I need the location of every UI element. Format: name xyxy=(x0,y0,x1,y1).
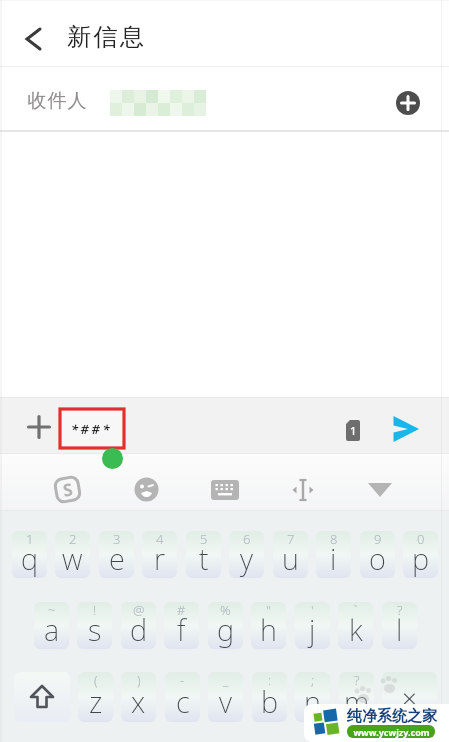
staticText: S xyxy=(61,477,75,502)
button[interactable] xyxy=(396,91,420,115)
button[interactable] xyxy=(392,415,420,443)
button[interactable]: 7 xyxy=(273,531,308,578)
staticText: r xyxy=(154,539,166,578)
button[interactable]: ~ xyxy=(34,602,69,649)
staticText: e xyxy=(109,539,125,578)
staticText: q xyxy=(21,539,39,578)
staticText: h xyxy=(260,610,277,649)
staticText: w xyxy=(62,539,83,578)
staticText: 4 xyxy=(156,531,164,548)
staticText: ) xyxy=(137,672,141,689)
staticText: × xyxy=(402,680,417,715)
button[interactable]: *##* xyxy=(60,409,124,448)
staticText: ` xyxy=(354,602,358,619)
button[interactable]: ; xyxy=(295,672,330,722)
staticText: ? xyxy=(354,672,360,689)
button[interactable] xyxy=(134,477,159,502)
button[interactable]: 4 xyxy=(142,531,177,578)
staticText: 9 xyxy=(374,531,382,548)
button[interactable]: 2 xyxy=(55,531,90,578)
staticText: % xyxy=(220,602,231,619)
button[interactable]: 1 xyxy=(12,531,47,578)
staticText: : xyxy=(268,672,272,689)
button[interactable]: " xyxy=(251,602,286,649)
staticText: 收件人 xyxy=(27,89,87,113)
staticText: c xyxy=(176,682,190,721)
staticText: *##* xyxy=(71,420,113,438)
button[interactable]: 1 xyxy=(346,420,360,441)
button[interactable] xyxy=(290,478,316,502)
staticText: 2 xyxy=(69,531,77,548)
staticText: d xyxy=(130,610,148,649)
staticText: 1 xyxy=(26,531,34,548)
staticText: 5 xyxy=(200,531,208,548)
button[interactable]: % xyxy=(208,602,243,649)
staticText: 7 xyxy=(287,531,295,548)
staticText: s xyxy=(88,610,102,649)
staticText: 纯净系统之家 xyxy=(347,707,437,726)
button[interactable]: - xyxy=(165,672,200,722)
staticText: ! xyxy=(93,602,97,619)
button[interactable]: × xyxy=(382,672,437,722)
staticText: ' xyxy=(311,602,314,619)
button[interactable] xyxy=(28,416,50,438)
button[interactable]: 0 xyxy=(403,531,438,578)
staticText: 3 xyxy=(113,531,121,548)
button[interactable]: ! xyxy=(77,602,112,649)
staticText: @ xyxy=(133,602,145,619)
staticText: p xyxy=(412,539,430,578)
staticText: # xyxy=(177,602,186,619)
button[interactable] xyxy=(211,480,239,500)
staticText: " xyxy=(266,602,271,619)
button[interactable]: 3 xyxy=(99,531,134,578)
staticText: _ xyxy=(223,672,229,689)
button[interactable]: 9 xyxy=(360,531,395,578)
staticText: ? xyxy=(397,602,403,619)
staticText: m xyxy=(344,682,370,721)
button[interactable]: ? xyxy=(339,672,374,722)
staticText: 新信息 xyxy=(67,22,147,52)
staticText: k xyxy=(349,610,363,649)
staticText: ~ xyxy=(48,602,56,619)
staticText: ( xyxy=(94,672,98,689)
staticText: n xyxy=(304,682,321,721)
staticText: u xyxy=(282,539,299,578)
button[interactable]: ` xyxy=(338,602,373,649)
staticText: ; xyxy=(311,672,315,689)
button[interactable]: 5 xyxy=(186,531,221,578)
staticText: 0 xyxy=(417,531,425,548)
button[interactable]: S xyxy=(52,474,83,505)
staticText: j xyxy=(309,610,316,649)
staticText: y xyxy=(240,539,253,578)
staticText: z xyxy=(89,682,103,721)
staticText: 6 xyxy=(243,531,251,548)
staticText: t xyxy=(199,539,209,578)
staticText: b xyxy=(261,682,279,721)
button[interactable]: ? xyxy=(382,602,417,649)
staticText: i xyxy=(330,539,337,578)
button[interactable] xyxy=(14,672,70,722)
button[interactable]: ' xyxy=(295,602,330,649)
staticText: www.ycwjzy.com xyxy=(353,726,430,738)
button[interactable]: _ xyxy=(208,672,243,722)
button[interactable]: # xyxy=(164,602,199,649)
staticText: a xyxy=(44,610,60,649)
button[interactable]: 8 xyxy=(316,531,351,578)
button[interactable]: ( xyxy=(78,672,113,722)
button[interactable] xyxy=(14,20,50,56)
button[interactable] xyxy=(367,482,393,500)
button[interactable]: @ xyxy=(121,602,156,649)
button[interactable]: 6 xyxy=(229,531,264,578)
button[interactable]: : xyxy=(252,672,287,722)
staticText: l xyxy=(396,610,403,649)
staticText: g xyxy=(217,610,235,649)
staticText: x xyxy=(131,682,146,721)
staticText: o xyxy=(369,539,386,578)
staticText: - xyxy=(180,672,185,689)
button[interactable]: ) xyxy=(121,672,156,722)
staticText: 1 xyxy=(350,423,357,438)
staticText: 8 xyxy=(330,531,338,548)
staticText: f xyxy=(177,610,186,649)
staticText: v xyxy=(219,682,232,721)
